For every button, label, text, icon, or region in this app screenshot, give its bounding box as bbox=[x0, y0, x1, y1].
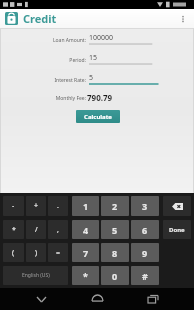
staticText: 100000 bbox=[89, 33, 114, 43]
button[interactable]: Backspace bbox=[163, 196, 191, 216]
staticText: 2 bbox=[112, 200, 118, 212]
staticText: - bbox=[12, 201, 15, 211]
staticText: 5 bbox=[89, 73, 94, 83]
staticText: 4 bbox=[83, 224, 89, 236]
button[interactable]: ) bbox=[26, 243, 46, 262]
button[interactable]: Home bbox=[80, 288, 114, 310]
button[interactable]: 3 bbox=[131, 196, 159, 216]
button[interactable]: Hide keyboard bbox=[24, 288, 58, 310]
staticText: 1 bbox=[83, 200, 89, 212]
button[interactable]: Done bbox=[163, 220, 191, 239]
button[interactable]: = bbox=[48, 243, 68, 262]
button[interactable]: Credit app icon bbox=[4, 11, 19, 26]
button[interactable]: English (US) bbox=[3, 266, 68, 285]
button[interactable]: Period: bbox=[0, 50, 194, 65]
button[interactable]: + bbox=[26, 196, 46, 216]
staticText: Loan Amount: bbox=[52, 37, 86, 44]
staticText: + bbox=[34, 201, 39, 211]
staticText: Calculate bbox=[84, 113, 112, 121]
staticText: Interest Rate: bbox=[54, 77, 86, 84]
staticText: Period: bbox=[69, 57, 86, 64]
button[interactable]: / bbox=[26, 220, 46, 239]
staticText: # bbox=[142, 270, 148, 282]
staticText: ( bbox=[12, 248, 15, 258]
staticText: * bbox=[83, 270, 88, 282]
button[interactable]: 4 bbox=[72, 220, 99, 239]
staticText: ) bbox=[35, 248, 38, 258]
button[interactable]: More options bbox=[175, 11, 191, 27]
button[interactable]: # bbox=[131, 266, 159, 285]
staticText: , bbox=[57, 225, 59, 235]
button[interactable]: 1 bbox=[72, 196, 99, 216]
button[interactable]: - bbox=[3, 196, 24, 216]
button[interactable]: ( bbox=[3, 243, 24, 262]
staticText: Monthly Fee: bbox=[55, 95, 86, 102]
staticText: English (US) bbox=[22, 272, 50, 279]
button[interactable]: Recent apps bbox=[136, 288, 170, 310]
button[interactable]: Calculate bbox=[76, 110, 120, 123]
button[interactable]: * bbox=[72, 266, 99, 285]
staticText: 3 bbox=[142, 200, 148, 212]
staticText: Credit bbox=[23, 11, 57, 26]
staticText: 0 bbox=[112, 270, 118, 282]
staticText: 790.79 bbox=[87, 92, 113, 103]
button[interactable]: 6 bbox=[131, 220, 159, 239]
staticText: 8 bbox=[112, 247, 118, 259]
button[interactable]: 5 bbox=[101, 220, 129, 239]
button[interactable]: , bbox=[48, 220, 68, 239]
button[interactable]: 0 bbox=[101, 266, 129, 285]
staticText: * bbox=[12, 225, 16, 235]
staticText: 15 bbox=[89, 53, 98, 63]
staticText: 7 bbox=[83, 247, 89, 259]
staticText: Done bbox=[169, 226, 185, 234]
button[interactable]: . bbox=[48, 196, 68, 216]
button[interactable]: 2 bbox=[101, 196, 129, 216]
button[interactable]: Interest Rate: bbox=[0, 70, 194, 85]
button[interactable]: * bbox=[3, 220, 24, 239]
button[interactable]: Loan Amount: bbox=[0, 30, 194, 45]
staticText: = bbox=[56, 248, 61, 258]
staticText: 9 bbox=[142, 247, 148, 259]
staticText: 6 bbox=[142, 224, 148, 236]
staticText: / bbox=[35, 225, 38, 235]
button[interactable]: 9 bbox=[131, 243, 159, 262]
staticText: . bbox=[57, 201, 59, 211]
button[interactable]: 7 bbox=[72, 243, 99, 262]
button[interactable]: 8 bbox=[101, 243, 129, 262]
staticText: 5 bbox=[112, 224, 118, 236]
